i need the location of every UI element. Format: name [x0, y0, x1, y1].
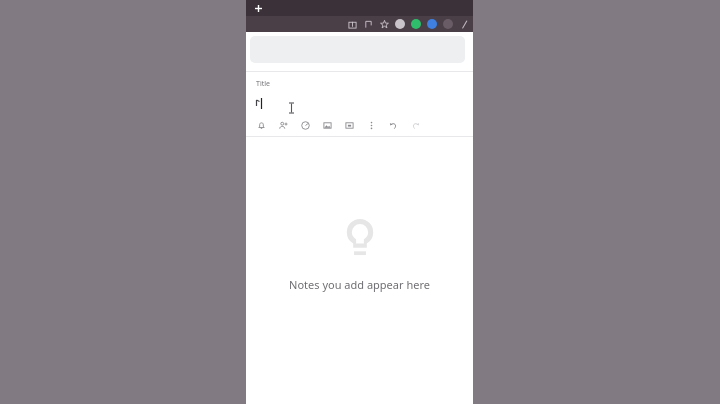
button[interactable]: Background colour	[294, 115, 316, 135]
button[interactable]: New tab	[251, 1, 265, 15]
button[interactable]: Account green	[408, 16, 424, 32]
button[interactable]: More	[456, 16, 472, 32]
staticText: Notes you add appear here	[289, 277, 430, 292]
button[interactable]: More options	[360, 115, 382, 135]
staticText: Title	[256, 79, 270, 89]
button[interactable]: Reminder	[250, 115, 272, 135]
button[interactable]: Collaborator	[272, 115, 294, 135]
button[interactable]: Add bookmark	[360, 16, 376, 32]
button[interactable]: Share	[344, 16, 360, 32]
button[interactable]: Undo	[382, 115, 404, 135]
button[interactable]: Add image	[316, 115, 338, 135]
button[interactable]: Account	[440, 16, 456, 32]
button[interactable]: Profile	[392, 16, 408, 32]
button[interactable]: Bookmark star	[376, 16, 392, 32]
button[interactable]: Redo	[404, 115, 426, 135]
button[interactable]: Archive	[338, 115, 360, 135]
button[interactable]: Account blue	[424, 16, 440, 32]
